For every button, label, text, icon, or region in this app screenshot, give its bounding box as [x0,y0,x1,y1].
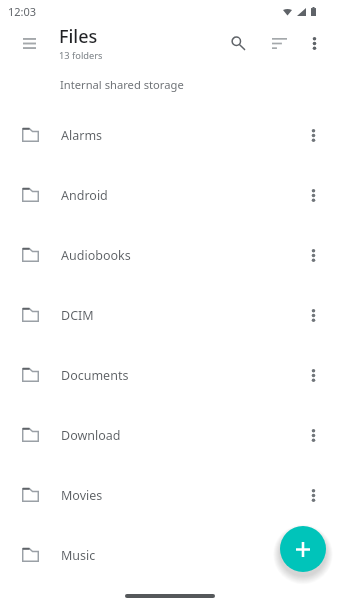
staticText: Alarms [61,127,303,144]
staticText: Music [61,547,303,564]
button[interactable]: DCIM [0,285,340,345]
button[interactable]: Documents [0,345,340,405]
button[interactable]: More options for Music [303,535,323,575]
button[interactable]: More options for Audiobooks [303,235,323,275]
staticText: 13 folders [59,49,103,62]
button[interactable]: More options [296,25,332,61]
staticText: Files [59,24,98,49]
button[interactable]: Movies [0,465,340,525]
staticText: Download [61,427,303,444]
button[interactable]: More options for Movies [303,475,323,515]
staticText: Internal shared storage [60,77,184,92]
button[interactable]: More options for DCIM [303,295,323,335]
button[interactable]: Android [0,165,340,225]
staticText: Movies [61,487,303,504]
button[interactable]: Menu [13,27,45,59]
staticText: Audiobooks [61,247,303,264]
staticText: DCIM [61,307,303,324]
button[interactable]: Audiobooks [0,225,340,285]
button[interactable]: Music [0,525,340,585]
button[interactable]: More options for Documents [303,355,323,395]
button[interactable]: More options for Android [303,175,323,215]
button[interactable]: Sort [261,25,297,61]
button[interactable]: More options for Download [303,415,323,455]
button[interactable]: Download [0,405,340,465]
staticText: Documents [61,367,303,384]
staticText: 12:03 [8,4,37,19]
button[interactable]: Add [280,526,326,572]
staticText: Android [61,187,303,204]
button[interactable]: More options for Alarms [303,115,323,155]
button[interactable]: Search [220,25,256,61]
button[interactable]: Alarms [0,105,340,165]
